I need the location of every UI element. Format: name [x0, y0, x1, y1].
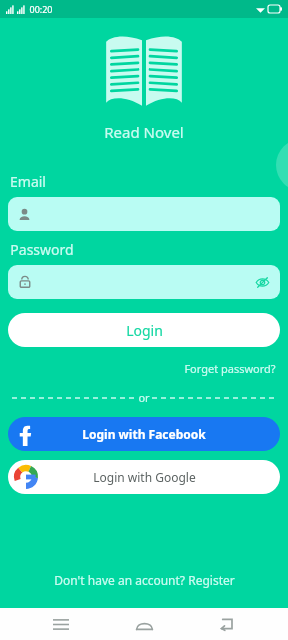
other: Password [18, 275, 32, 289]
staticText: Email [10, 172, 46, 191]
staticText: Login with Facebook [82, 426, 206, 442]
button[interactable]: Login [8, 313, 280, 347]
button[interactable]: Password [8, 265, 280, 299]
button[interactable]: Login with Facebook [8, 417, 280, 451]
button[interactable]: Back [205, 608, 249, 640]
button[interactable]: User [8, 197, 280, 231]
staticText: Forget password? [184, 361, 276, 376]
button[interactable]: Login with Google [8, 460, 280, 494]
other: User [18, 208, 31, 221]
staticText: Read Novel [104, 122, 184, 142]
staticText: Password [10, 240, 74, 259]
button[interactable]: Forget password? [182, 359, 278, 378]
staticText: or [138, 390, 150, 405]
button[interactable]: Home [122, 608, 166, 640]
other: Show password [255, 275, 270, 290]
staticText: 00:20 [29, 3, 53, 15]
button[interactable]: Don't have an account? Register [0, 568, 288, 592]
staticText: Don't have an account? Register [54, 572, 235, 588]
staticText: Login [126, 321, 163, 340]
button[interactable]: Recents [39, 608, 83, 640]
staticText: Login with Google [93, 469, 196, 485]
